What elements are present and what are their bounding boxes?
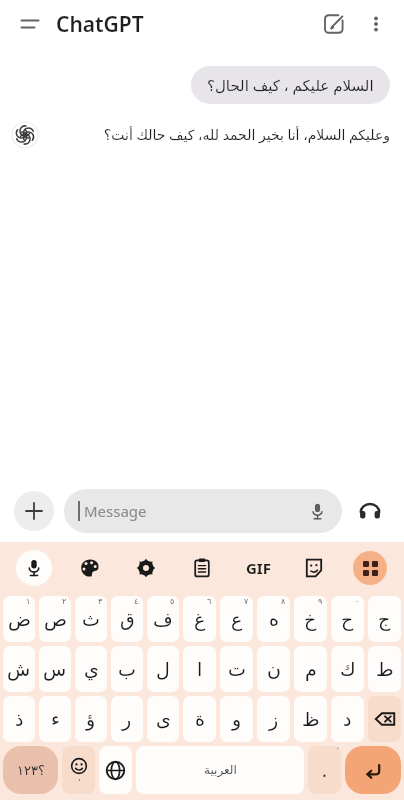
button[interactable]: Voice typing bbox=[6, 542, 62, 594]
staticText: ه bbox=[269, 608, 279, 630]
button[interactable]: ح bbox=[331, 596, 364, 642]
staticText: ي bbox=[84, 658, 99, 680]
staticText: ع bbox=[231, 608, 243, 630]
button[interactable]: ى bbox=[147, 696, 179, 742]
staticText: ذ bbox=[15, 708, 24, 730]
button[interactable]: Voice input bbox=[304, 498, 330, 524]
button[interactable]: ل bbox=[147, 646, 179, 692]
button[interactable]: ز bbox=[257, 696, 290, 742]
staticText: خ bbox=[304, 608, 317, 630]
staticText: ن bbox=[267, 658, 281, 680]
button[interactable]: New chat bbox=[312, 2, 356, 46]
staticText: ى bbox=[156, 708, 171, 730]
staticText: ش bbox=[7, 658, 31, 680]
staticText: ل bbox=[156, 658, 170, 680]
button[interactable]: غ bbox=[183, 596, 216, 642]
staticText: ظ bbox=[302, 708, 320, 730]
button[interactable]: Themes bbox=[62, 542, 118, 594]
staticText: د bbox=[343, 708, 352, 730]
staticText: ChatGPT bbox=[56, 10, 144, 39]
button[interactable]: Stickers bbox=[286, 542, 342, 594]
staticText: و bbox=[232, 708, 242, 730]
button[interactable]: ص bbox=[39, 596, 71, 642]
button[interactable]: ض bbox=[3, 596, 35, 642]
button[interactable]: ف bbox=[147, 596, 179, 642]
staticText: ٦ bbox=[207, 597, 212, 606]
staticText: ؤ bbox=[86, 708, 96, 730]
button[interactable]: ن bbox=[257, 646, 290, 692]
staticText: السلام عليكم ، كيف الحال؟ bbox=[207, 75, 374, 95]
staticText: ث bbox=[82, 608, 100, 630]
button[interactable]: Add attachment bbox=[14, 491, 54, 531]
button[interactable]: ق bbox=[111, 596, 143, 642]
button[interactable]: ث bbox=[75, 596, 107, 642]
button[interactable]: ء bbox=[39, 696, 71, 742]
staticText: وعليكم السلام، أنا بخير الحمد لله، كيف ح… bbox=[48, 125, 390, 144]
staticText: ٧ bbox=[244, 597, 249, 606]
staticText: ١ bbox=[26, 597, 31, 606]
button[interactable]: ش bbox=[3, 646, 35, 692]
staticText: ٥ bbox=[170, 597, 175, 606]
button[interactable]: More options bbox=[356, 4, 396, 44]
staticText: ت bbox=[228, 658, 246, 680]
staticText: ز bbox=[269, 708, 279, 730]
staticText: ا bbox=[197, 658, 203, 680]
staticText: ٢ bbox=[62, 597, 67, 606]
button[interactable]: ه bbox=[257, 596, 290, 642]
button[interactable]: ر bbox=[111, 696, 143, 742]
staticText: ر bbox=[122, 708, 132, 730]
staticText: ح bbox=[341, 608, 354, 630]
button[interactable]: ج bbox=[368, 596, 401, 642]
staticText: ط bbox=[376, 658, 394, 680]
staticText: Message bbox=[84, 501, 304, 521]
staticText: GIF bbox=[246, 558, 271, 578]
button[interactable]: Change language bbox=[99, 746, 132, 794]
staticText: ص bbox=[44, 608, 67, 630]
button[interactable]: Menu bbox=[10, 4, 50, 44]
button[interactable]: م bbox=[294, 646, 327, 692]
staticText: ج bbox=[378, 608, 391, 630]
staticText: ق bbox=[120, 608, 135, 630]
button[interactable]: ذ bbox=[3, 696, 35, 742]
staticText: ٨ bbox=[281, 597, 286, 606]
button[interactable]: Clipboard bbox=[174, 542, 230, 594]
button[interactable]: Message bbox=[64, 489, 342, 533]
staticText: ، bbox=[78, 774, 81, 783]
button[interactable]: س bbox=[39, 646, 71, 692]
staticText: ٣ bbox=[98, 597, 103, 606]
button[interactable]: السلام عليكم ، كيف الحال؟ bbox=[191, 66, 390, 104]
button[interactable]: ك bbox=[331, 646, 364, 692]
staticText: . bbox=[322, 758, 327, 783]
button[interactable]: Backspace bbox=[368, 696, 401, 742]
staticText: ٩ bbox=[318, 597, 323, 606]
button[interactable]: Settings bbox=[118, 542, 174, 594]
button[interactable]: GIF bbox=[230, 542, 286, 594]
staticText: ؟١٢٣ bbox=[17, 763, 45, 778]
staticText: ء bbox=[51, 708, 60, 730]
button[interactable]: ؤ bbox=[75, 696, 107, 742]
staticText: س bbox=[43, 658, 67, 680]
button[interactable]: Emoji bbox=[62, 746, 95, 794]
button[interactable]: More tools bbox=[342, 542, 398, 594]
button[interactable]: ت bbox=[220, 646, 253, 692]
button[interactable]: ظ bbox=[294, 696, 327, 742]
button[interactable]: ب bbox=[111, 646, 143, 692]
button[interactable]: . bbox=[308, 746, 341, 794]
staticText: ٠ bbox=[355, 597, 360, 606]
button[interactable]: ع bbox=[220, 596, 253, 642]
button[interactable]: العربية bbox=[136, 746, 304, 794]
staticText: غ bbox=[194, 608, 206, 630]
staticText: ض bbox=[8, 608, 31, 630]
button[interactable]: ة bbox=[183, 696, 216, 742]
button[interactable]: Voice mode bbox=[350, 491, 390, 531]
button[interactable]: د bbox=[331, 696, 364, 742]
button[interactable]: ي bbox=[75, 646, 107, 692]
staticText: ك bbox=[340, 658, 356, 680]
button[interactable]: Enter bbox=[345, 746, 401, 794]
button[interactable]: و bbox=[220, 696, 253, 742]
button[interactable]: ؟١٢٣ bbox=[3, 746, 58, 794]
button[interactable]: خ bbox=[294, 596, 327, 642]
button[interactable]: ا bbox=[183, 646, 216, 692]
button[interactable]: ط bbox=[368, 646, 401, 692]
staticText: ٤ bbox=[134, 597, 139, 606]
